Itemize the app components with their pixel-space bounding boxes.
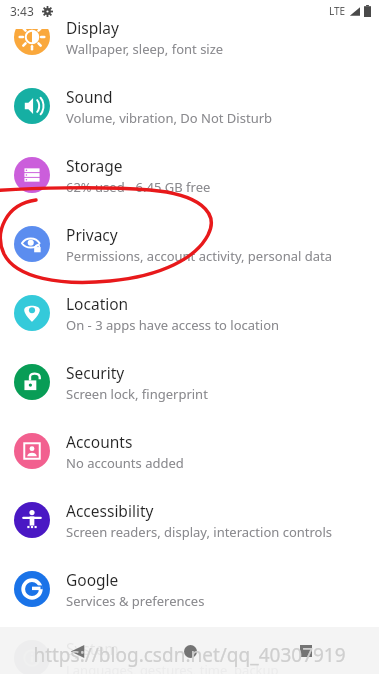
staticText: Screen readers, display, interaction con… xyxy=(66,523,333,541)
button[interactable]: Recents xyxy=(289,634,323,668)
staticText: Languages, gestures, time, backup xyxy=(66,661,279,674)
staticText: https://blog.csdn.net/qq_40307919 xyxy=(33,642,346,668)
staticText: Location xyxy=(66,293,129,314)
button[interactable]: Google xyxy=(0,554,379,623)
staticText: Accessibility xyxy=(66,500,154,521)
button[interactable]: Location xyxy=(0,278,379,347)
button[interactable]: Display xyxy=(0,2,379,71)
staticText: System xyxy=(66,638,119,659)
staticText: Storage xyxy=(66,155,123,176)
staticText: Google xyxy=(66,569,119,590)
button[interactable]: Sound xyxy=(0,71,379,140)
button[interactable]: Security xyxy=(0,347,379,416)
staticText: LTE xyxy=(329,4,346,18)
staticText: 3:43 xyxy=(10,3,34,19)
staticText: Privacy xyxy=(66,224,118,245)
staticText: Security xyxy=(66,362,125,383)
staticText: No accounts added xyxy=(66,454,184,472)
staticText: Display xyxy=(66,17,119,38)
staticText: Volume, vibration, Do Not Disturb xyxy=(66,109,273,127)
button[interactable]: Privacy xyxy=(0,209,379,278)
button[interactable]: Home xyxy=(173,634,207,668)
button[interactable]: Back xyxy=(60,634,94,668)
staticText: 62% used - 6.45 GB free xyxy=(66,178,211,196)
button[interactable]: System xyxy=(0,623,379,674)
button[interactable]: Accessibility xyxy=(0,485,379,554)
staticText: Wallpaper, sleep, font size xyxy=(66,40,224,58)
button[interactable]: Accounts xyxy=(0,416,379,485)
staticText: On - 3 apps have access to location xyxy=(66,316,280,334)
staticText: Screen lock, fingerprint xyxy=(66,385,208,403)
staticText: Services & preferences xyxy=(66,592,205,610)
button[interactable]: Storage xyxy=(0,140,379,209)
staticText: Accounts xyxy=(66,431,133,452)
staticText: Sound xyxy=(66,86,113,107)
staticText: Permissions, account activity, personal … xyxy=(66,247,332,265)
